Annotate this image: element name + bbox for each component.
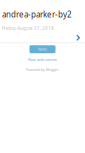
button[interactable]: View web version — [28, 57, 57, 62]
staticText: Friday, August 31, 2018 — [2, 25, 54, 31]
button[interactable]: Home — [29, 45, 55, 53]
staticText: View web version — [28, 57, 57, 62]
button[interactable]: Newer Post — [76, 34, 85, 41]
staticText: Home — [38, 47, 47, 51]
staticText: andrea-parker-by2 — [2, 9, 72, 20]
staticText: Powered by Blogger. — [26, 67, 59, 72]
